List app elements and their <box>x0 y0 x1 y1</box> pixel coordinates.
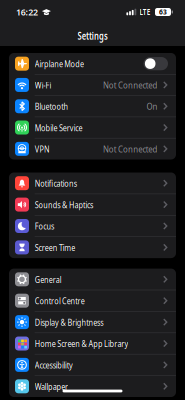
button[interactable]: Focus <box>9 215 176 237</box>
button[interactable]: Bluetooth <box>9 96 176 117</box>
staticText: VPN <box>35 143 54 155</box>
staticText: LTE <box>139 7 152 17</box>
staticText: Mobile Service <box>35 121 96 134</box>
staticText: Accessibility <box>35 359 84 371</box>
staticText: Not Connected <box>92 143 157 155</box>
staticText: Notifications <box>35 177 89 189</box>
staticText: Focus <box>35 220 60 232</box>
staticText: General <box>35 273 69 285</box>
button[interactable]: Wallpaper <box>9 376 176 397</box>
staticText: Wi-Fi <box>35 79 56 91</box>
staticText: Bluetooth <box>35 100 78 112</box>
staticText: Screen Time <box>35 241 87 254</box>
staticText: Airplane Mode <box>35 57 98 70</box>
staticText: Settings <box>71 29 113 43</box>
staticText: 16:22 <box>16 6 39 18</box>
button[interactable]: Notifications <box>9 172 176 194</box>
button[interactable]: Mobile Service <box>9 117 176 138</box>
staticText: Display & Brightness <box>35 316 123 328</box>
button[interactable]: General <box>9 269 176 290</box>
staticText: Sounds & Haptics <box>35 198 110 211</box>
staticText: Home Screen & App Library <box>35 337 155 350</box>
button[interactable]: Wi-Fi <box>9 74 176 96</box>
button[interactable]: Display & Brightness <box>9 311 176 333</box>
button[interactable]: VPN <box>9 138 176 159</box>
staticText: Wallpaper <box>35 380 78 392</box>
staticText: Control Centre <box>35 294 99 307</box>
button[interactable]: Home Screen & App Library <box>9 333 176 354</box>
button[interactable]: Screen Time <box>9 237 176 258</box>
button[interactable]: Accessibility <box>9 354 176 376</box>
staticText: On <box>144 100 157 112</box>
button[interactable]: Airplane Mode <box>9 53 176 74</box>
button[interactable]: Sounds & Haptics <box>9 194 176 215</box>
staticText: 63 <box>159 8 167 16</box>
button[interactable]: Control Centre <box>9 290 176 311</box>
staticText: Not Connected <box>92 79 157 91</box>
